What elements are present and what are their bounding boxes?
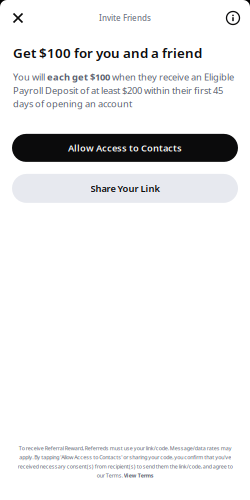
staticText: Get $100 for you and a friend [13,44,202,62]
staticText: Invite Friends [99,13,151,23]
button[interactable]: More information [221,6,245,30]
staticText: To receive Referral Reward, Referreds mu… [17,445,232,479]
button[interactable]: Close [6,6,30,30]
staticText: Share Your Link [90,182,159,195]
staticText: Allow Access to Contacts [68,142,182,154]
button[interactable]: Share Your Link [12,174,238,203]
button[interactable]: Allow Access to Contacts [12,134,238,162]
staticText: You will each get $100 when they receive… [13,71,234,110]
